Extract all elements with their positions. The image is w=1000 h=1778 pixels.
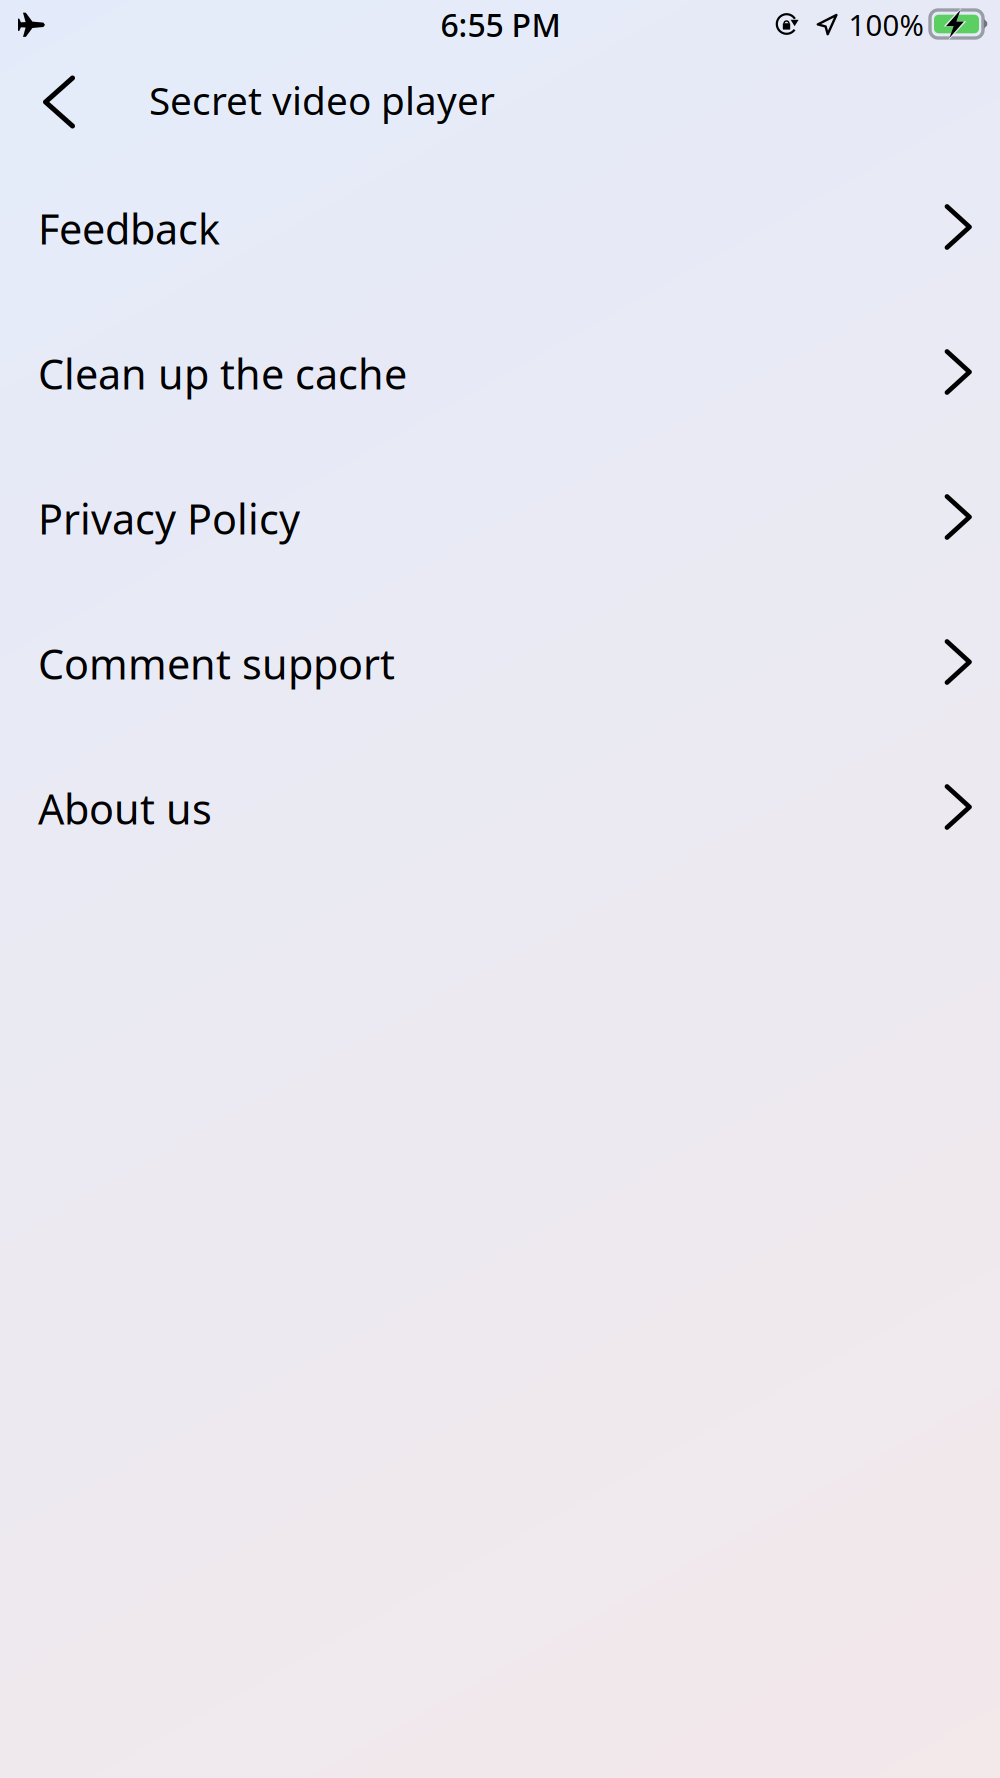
button[interactable]: Comment support xyxy=(0,591,1000,736)
staticText: 6:55 PM xyxy=(440,3,560,46)
staticText: Clean up the cache xyxy=(38,346,407,401)
staticText: Comment support xyxy=(38,636,395,691)
button[interactable]: Privacy Policy xyxy=(0,446,1000,591)
staticText: Secret video player xyxy=(149,74,495,126)
button[interactable]: Back xyxy=(13,52,105,152)
staticText: Privacy Policy xyxy=(38,491,300,546)
staticText: 100% xyxy=(848,5,923,44)
staticText: About us xyxy=(38,781,212,836)
staticText: Feedback xyxy=(38,201,220,256)
button[interactable]: Feedback xyxy=(0,156,1000,301)
button[interactable]: About us xyxy=(0,736,1000,881)
button[interactable]: Clean up the cache xyxy=(0,301,1000,446)
